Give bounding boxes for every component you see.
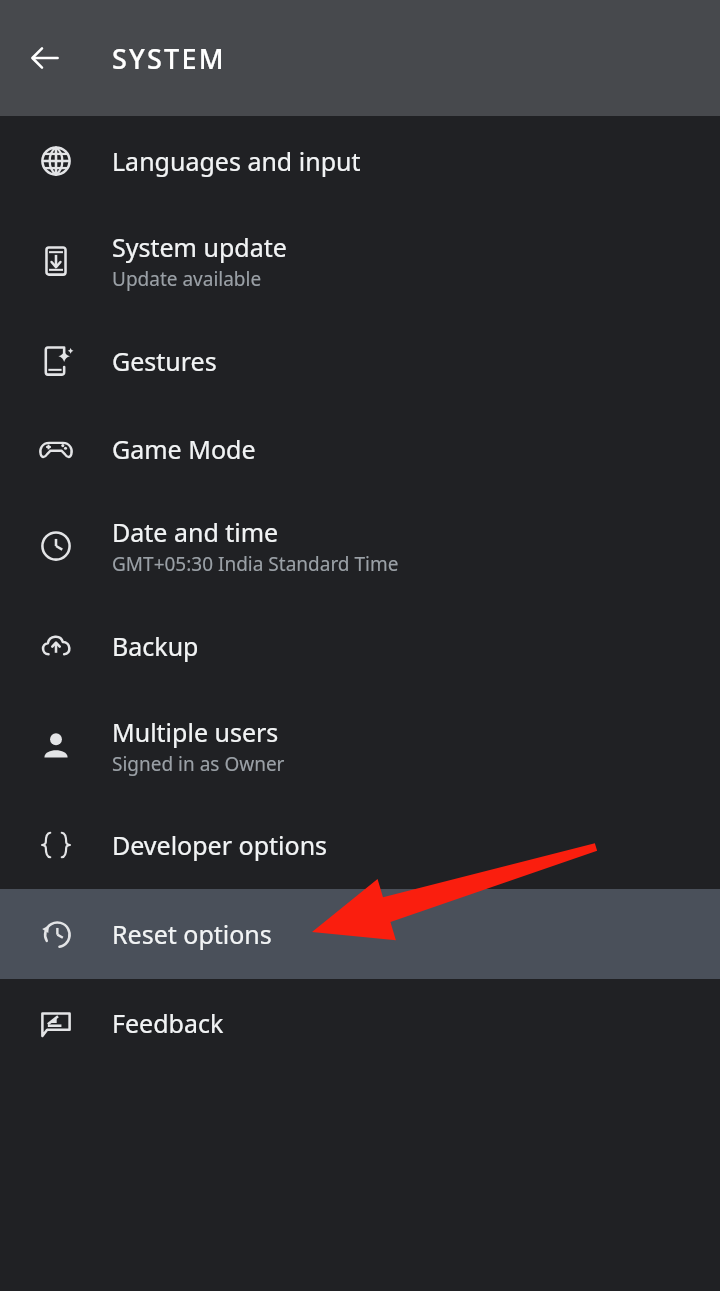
button[interactable]: Game Mode bbox=[0, 406, 720, 491]
button[interactable]: Developer options bbox=[0, 801, 720, 889]
button[interactable]: Feedback bbox=[0, 979, 720, 1067]
staticText: SYSTEM bbox=[112, 40, 226, 77]
staticText: Multiple users bbox=[112, 715, 279, 749]
staticText: Reset options bbox=[112, 917, 272, 951]
staticText: Backup bbox=[112, 629, 199, 663]
staticText: Languages and input bbox=[112, 144, 361, 178]
button[interactable]: System update bbox=[0, 206, 720, 316]
staticText: Gestures bbox=[112, 344, 217, 378]
staticText: Developer options bbox=[112, 828, 328, 862]
button[interactable]: Multiple users bbox=[0, 691, 720, 801]
staticText: Update available bbox=[112, 266, 262, 292]
button[interactable]: Reset options bbox=[0, 889, 720, 979]
staticText: Feedback bbox=[112, 1006, 224, 1040]
staticText: Game Mode bbox=[112, 432, 256, 466]
staticText: System update bbox=[112, 230, 287, 264]
button[interactable]: Backup bbox=[0, 601, 720, 691]
staticText: Date and time bbox=[112, 515, 279, 549]
button[interactable]: Gestures bbox=[0, 316, 720, 406]
button[interactable]: Languages and input bbox=[0, 116, 720, 206]
button[interactable]: Date and time bbox=[0, 491, 720, 601]
staticText: GMT+05:30 India Standard Time bbox=[112, 551, 399, 577]
staticText: Signed in as Owner bbox=[112, 751, 285, 777]
button[interactable]: Back bbox=[18, 31, 72, 85]
